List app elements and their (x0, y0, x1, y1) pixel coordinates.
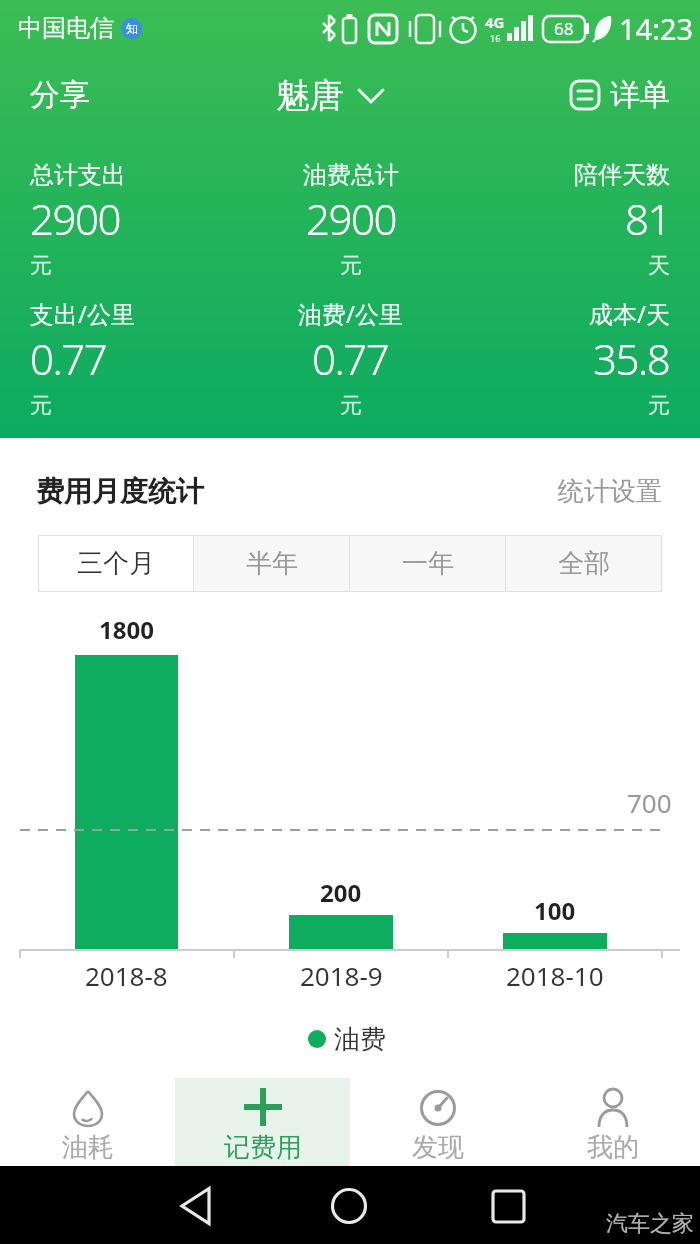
staticText: 发现 (412, 1131, 464, 1164)
staticText: 总计支出 (30, 160, 126, 190)
staticText: 费用月度统计 (36, 474, 204, 509)
staticText: 统计设置 (558, 475, 662, 508)
button[interactable]: 详单 (570, 76, 670, 114)
staticText: 支出/公里 (30, 297, 135, 330)
staticText: 2900 (30, 190, 120, 247)
staticText: 半年 (246, 547, 298, 580)
button[interactable]: 魅唐 (276, 74, 384, 117)
button[interactable]: 统计设置 (558, 475, 662, 508)
staticText: 元 (648, 392, 670, 420)
staticText: 详单 (610, 76, 670, 114)
staticText: 16 (490, 32, 501, 44)
button[interactable]: 全部 (506, 536, 661, 591)
staticText: 2018-10 (506, 958, 604, 993)
staticText: 元 (30, 252, 52, 280)
staticText: 知 (126, 21, 138, 36)
staticText: 油费 (334, 1023, 386, 1056)
staticText: 油费/公里 (298, 297, 403, 330)
staticText: 全部 (558, 547, 610, 580)
staticText: 汽车之家 (606, 1210, 694, 1238)
staticText: 油耗 (62, 1131, 114, 1164)
staticText: 35.8 (593, 330, 670, 387)
staticText: 68 (554, 17, 574, 40)
button[interactable]: 发现 (350, 1078, 525, 1166)
button[interactable] (467, 1166, 700, 1244)
staticText: 元 (340, 252, 362, 280)
button[interactable]: 三个月 (39, 536, 193, 591)
staticText: 2900 (306, 190, 396, 247)
staticText: 成本/天 (589, 297, 670, 330)
staticText: 记费用 (224, 1131, 302, 1164)
staticText: 0.77 (312, 330, 389, 387)
staticText: 三个月 (77, 547, 155, 580)
staticText: 陪伴天数 (574, 160, 670, 190)
staticText: 元 (340, 392, 362, 420)
staticText: 100 (534, 894, 576, 927)
staticText: 油费总计 (303, 160, 399, 190)
staticText: 2018-9 (300, 958, 383, 993)
staticText: 1800 (99, 613, 154, 646)
staticText: 700 (627, 785, 672, 820)
button[interactable]: 一年 (350, 536, 505, 591)
staticText: 元 (30, 392, 52, 420)
staticText: 4G (485, 12, 505, 32)
staticText: 天 (648, 252, 670, 280)
staticText: 魅唐 (276, 74, 344, 117)
staticText: 分享 (30, 76, 90, 114)
staticText: 200 (320, 876, 362, 909)
button[interactable]: 我的 (525, 1078, 700, 1166)
staticText: 我的 (587, 1131, 639, 1164)
staticText: 2018-8 (85, 958, 168, 993)
staticText: 0.77 (30, 330, 107, 387)
button[interactable]: 半年 (194, 536, 349, 591)
staticText: 中国电信 (18, 13, 114, 43)
button[interactable]: 分享 (30, 76, 90, 114)
button[interactable] (234, 1166, 467, 1244)
staticText: 一年 (402, 547, 454, 580)
staticText: 14:23 (619, 9, 694, 48)
button[interactable]: 记费用 (175, 1078, 350, 1166)
staticText: 81 (625, 190, 670, 247)
button[interactable] (0, 1166, 234, 1244)
button[interactable]: 油耗 (0, 1078, 175, 1166)
